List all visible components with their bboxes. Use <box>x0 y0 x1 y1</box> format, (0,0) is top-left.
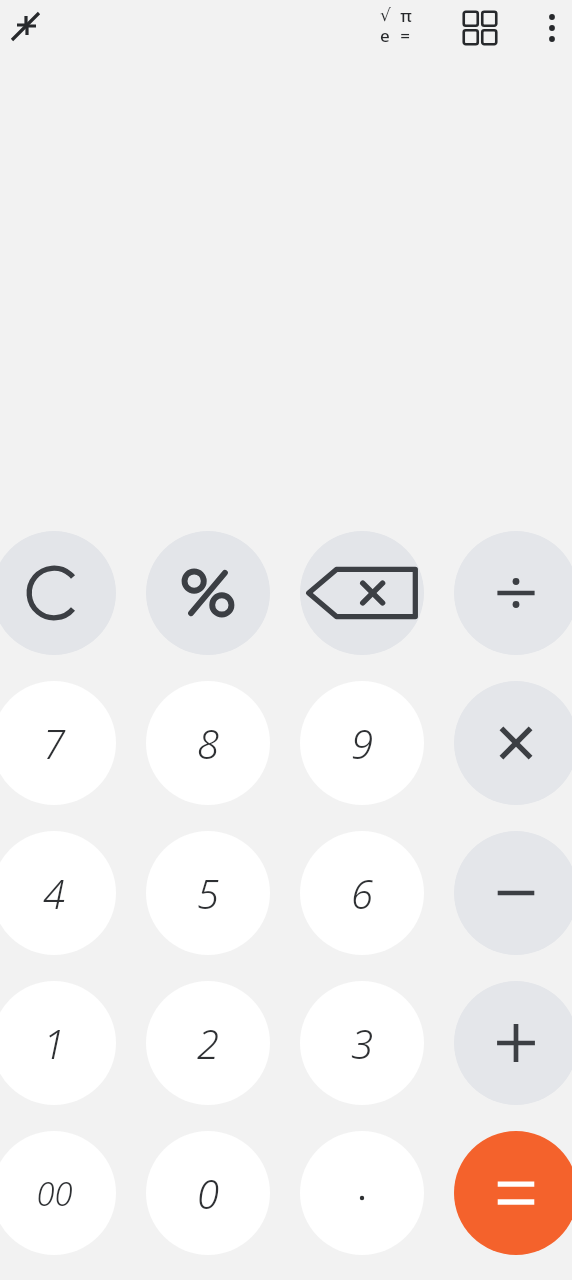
button[interactable]: 3 <box>300 981 424 1105</box>
button[interactable]: 5 <box>146 831 270 955</box>
button[interactable]: Backspace <box>300 531 424 655</box>
button[interactable]: Decimal point <box>300 1131 424 1255</box>
staticText: π <box>400 4 412 27</box>
staticText: = <box>400 24 410 47</box>
button[interactable]: 2 <box>146 981 270 1105</box>
staticText: 6 <box>351 866 373 920</box>
staticText: 2 <box>197 1016 219 1070</box>
button[interactable]: Collapse <box>0 0 56 56</box>
staticText: √ <box>380 5 391 25</box>
button[interactable]: 8 <box>146 681 270 805</box>
button[interactable]: Minus <box>454 831 572 955</box>
button[interactable]: 7 <box>0 681 116 805</box>
button[interactable]: Equals <box>454 1131 572 1255</box>
staticText: 3 <box>351 1016 373 1070</box>
staticText: 4 <box>43 866 65 920</box>
staticText: 1 <box>43 1016 65 1070</box>
staticText: 7 <box>43 716 65 770</box>
staticText: 00 <box>36 1171 73 1216</box>
button[interactable]: 6 <box>300 831 424 955</box>
button[interactable]: 1 <box>0 981 116 1105</box>
button[interactable]: Multiply <box>454 681 572 805</box>
staticText: 5 <box>197 866 219 920</box>
staticText: e <box>380 24 390 47</box>
button[interactable]: Percent <box>146 531 270 655</box>
button[interactable]: More options <box>530 0 572 56</box>
button[interactable]: 00 <box>0 1131 116 1255</box>
button[interactable]: 9 <box>300 681 424 805</box>
button[interactable]: Plus <box>454 981 572 1105</box>
staticText: 8 <box>197 716 219 770</box>
staticText: 0 <box>197 1166 219 1220</box>
button[interactable]: 4 <box>0 831 116 955</box>
button[interactable]: Keypad layout <box>452 0 508 56</box>
button[interactable]: Scientific mode <box>372 0 434 56</box>
button[interactable]: Divide <box>454 531 572 655</box>
staticText: 9 <box>351 716 373 770</box>
button[interactable]: 0 <box>146 1131 270 1255</box>
button[interactable]: Clear <box>0 531 116 655</box>
